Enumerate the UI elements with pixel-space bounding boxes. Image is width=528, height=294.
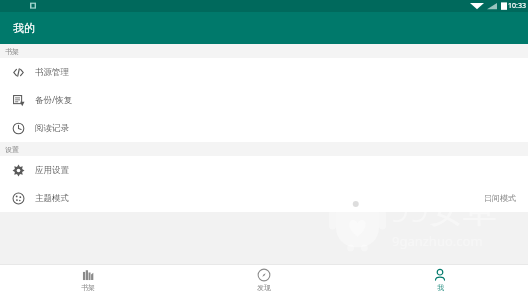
staticText: 主题模式 (35, 193, 69, 204)
staticText: 10:33 (508, 1, 526, 11)
button[interactable]: 我 (352, 265, 528, 294)
button[interactable]: 应用设置 (0, 156, 528, 184)
button[interactable]: 书架 (0, 265, 176, 294)
button[interactable]: 阅读记录 (0, 114, 528, 142)
staticText: 书源管理 (35, 67, 69, 78)
staticText: 我的 (13, 21, 35, 35)
staticText: 设置 (5, 145, 19, 154)
staticText: 书架 (81, 283, 95, 292)
button[interactable]: 书源管理 (0, 58, 528, 86)
staticText: 备份/恢复 (35, 94, 73, 106)
staticText: 应用设置 (35, 165, 69, 176)
staticText: 阅读记录 (35, 123, 69, 134)
staticText: 日间模式 (484, 193, 516, 203)
button[interactable]: 发现 (176, 265, 352, 294)
button[interactable]: 主题模式 (0, 184, 528, 212)
staticText: 发现 (257, 283, 271, 292)
staticText: 我 (437, 283, 444, 292)
button[interactable]: 备份/恢复 (0, 86, 528, 114)
staticText: 99安卓 (390, 186, 497, 232)
staticText: 书架 (5, 47, 19, 56)
